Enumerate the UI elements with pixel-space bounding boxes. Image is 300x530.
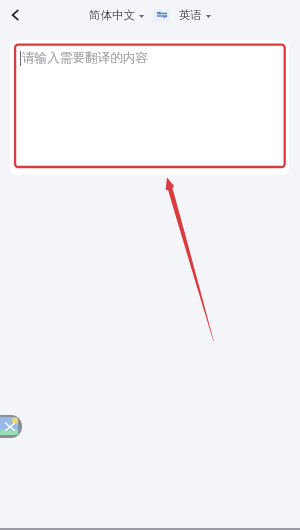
button[interactable]: Pick image [0, 415, 22, 438]
staticText: 英语 [179, 8, 202, 22]
button[interactable]: 简体中文 [89, 8, 144, 22]
button[interactable]: Back [4, 4, 26, 26]
button[interactable]: Swap languages [153, 9, 170, 22]
staticText: 简体中文 [89, 8, 135, 22]
button[interactable]: 英语 [179, 8, 211, 22]
button[interactable]: 请输入需要翻译的内容 [10, 40, 289, 175]
staticText: 请输入需要翻译的内容 [22, 50, 148, 66]
